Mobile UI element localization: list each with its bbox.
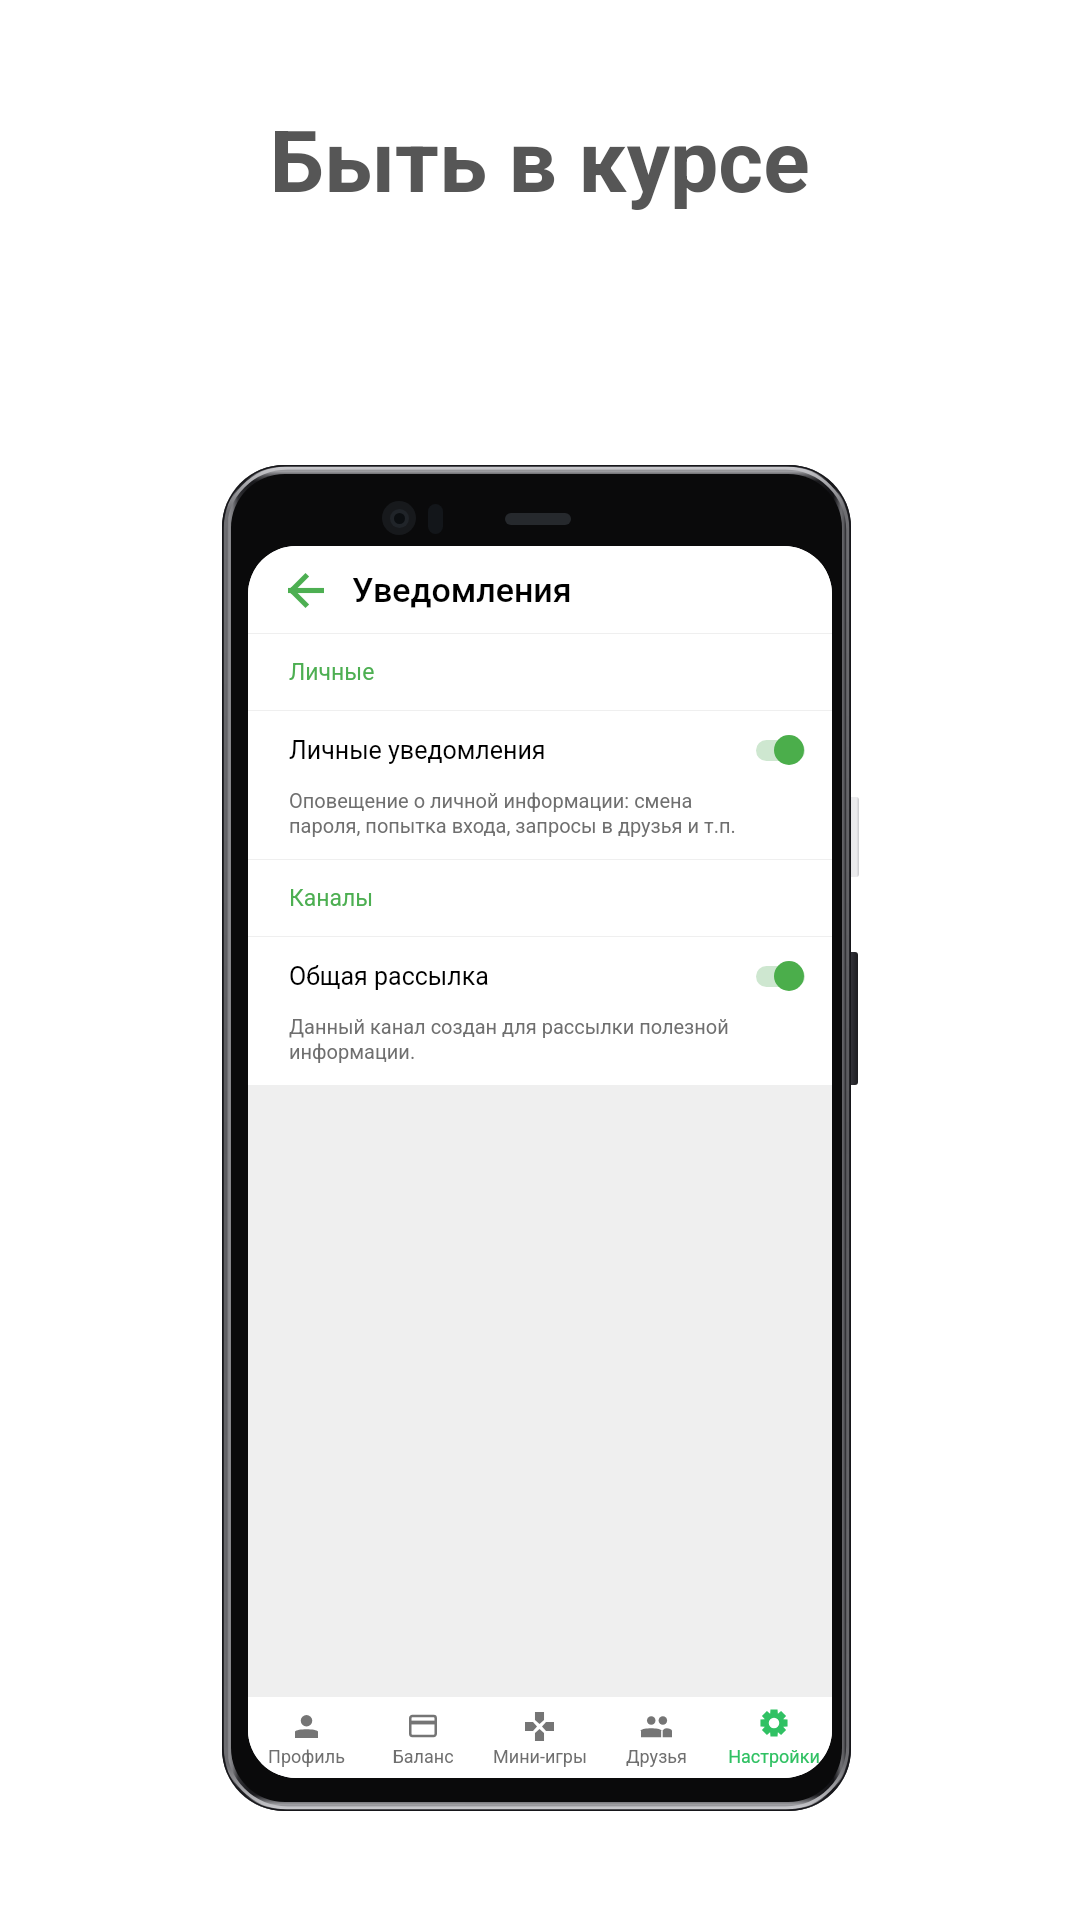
staticText: Оповещение о личной информации: смена па… bbox=[289, 789, 736, 838]
button[interactable]: Общая рассылка bbox=[248, 937, 832, 1085]
staticText: Быть в курсе bbox=[270, 112, 810, 213]
button[interactable]: Назад bbox=[280, 564, 332, 616]
staticText: Профиль bbox=[268, 1746, 345, 1767]
button[interactable] bbox=[755, 959, 807, 993]
button[interactable]: Друзья bbox=[598, 1697, 715, 1778]
button[interactable]: Личные уведомления bbox=[248, 711, 832, 859]
button[interactable] bbox=[755, 733, 807, 767]
staticText: Друзья bbox=[626, 1746, 687, 1767]
button[interactable]: Настройки bbox=[715, 1697, 832, 1778]
staticText: Личные уведомления bbox=[289, 736, 546, 765]
staticText: Мини-игры bbox=[493, 1746, 587, 1767]
staticText: Баланс bbox=[392, 1746, 454, 1767]
staticText: Уведомления bbox=[352, 570, 572, 610]
staticText: Каналы bbox=[289, 885, 374, 912]
button[interactable]: Профиль bbox=[248, 1697, 364, 1778]
staticText: Данный канал создан для рассылки полезно… bbox=[289, 1015, 729, 1064]
staticText: Общая рассылка bbox=[289, 962, 489, 991]
button[interactable]: Баланс bbox=[364, 1697, 481, 1778]
staticText: Личные bbox=[289, 659, 375, 686]
button[interactable]: Мини-игры bbox=[481, 1697, 598, 1778]
staticText: Настройки bbox=[728, 1746, 820, 1767]
